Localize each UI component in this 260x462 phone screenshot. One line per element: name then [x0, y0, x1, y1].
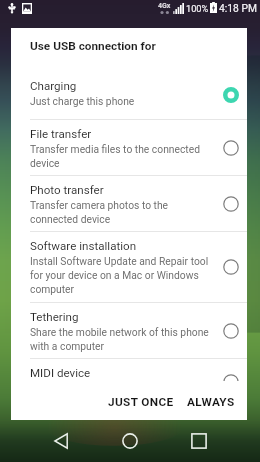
- staticText: 4Gx: [158, 2, 171, 10]
- button[interactable]: Home: [111, 423, 149, 459]
- button[interactable]: Charging: [11, 72, 247, 119]
- staticText: Share the mobile network of this phone w…: [30, 326, 214, 353]
- button[interactable]: Photo transfer: [11, 176, 247, 231]
- button[interactable]: MIDI device: [11, 359, 247, 406]
- staticText: Photo transfer: [30, 183, 104, 197]
- staticText: Just charge this phone: [30, 95, 135, 107]
- button[interactable]: JUST ONCE: [102, 388, 180, 416]
- button[interactable]: Tethering: [11, 303, 247, 358]
- staticText: JUST ONCE: [108, 395, 174, 409]
- staticText: MIDI device: [30, 366, 91, 380]
- button[interactable]: Recent apps: [180, 423, 218, 459]
- staticText: File transfer: [30, 127, 92, 141]
- staticText: Transfer camera photos to the connected …: [30, 199, 214, 226]
- staticText: Software installation: [30, 239, 137, 253]
- button[interactable]: ALWAYS: [181, 388, 241, 416]
- staticText: 4:18 PM: [219, 2, 257, 14]
- staticText: Tethering: [30, 310, 79, 324]
- staticText: ALWAYS: [187, 395, 235, 409]
- button[interactable]: Back: [42, 423, 80, 459]
- staticText: Use USB connection for: [30, 39, 156, 53]
- staticText: 100%: [186, 3, 209, 14]
- button[interactable]: Software installation: [11, 232, 247, 302]
- button[interactable]: File transfer: [11, 120, 247, 175]
- staticText: Transfer media files to the connected de…: [30, 143, 214, 170]
- staticText: Charging: [30, 79, 77, 93]
- staticText: Install Software Update and Repair tool …: [30, 255, 214, 296]
